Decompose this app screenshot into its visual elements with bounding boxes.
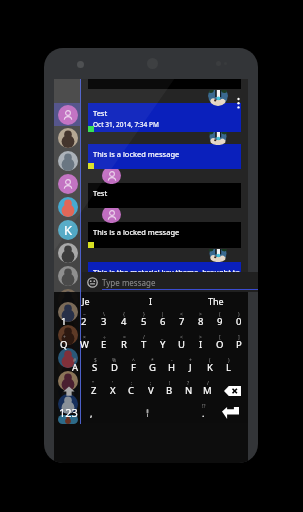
button[interactable]: P: [229, 333, 248, 356]
button[interactable]: [54, 287, 81, 310]
staticText: Test: [93, 108, 108, 118]
button[interactable]: [54, 369, 81, 392]
button[interactable]: 4: [114, 310, 134, 333]
button[interactable]: 8: [191, 310, 210, 333]
button[interactable]: Backspace: [217, 379, 248, 402]
staticText: |: [161, 311, 164, 318]
button[interactable]: I: [191, 333, 210, 356]
button[interactable]: Type message: [102, 272, 258, 292]
staticText: E: [101, 338, 107, 351]
button[interactable]: B: [160, 379, 179, 402]
button[interactable]: Test: [88, 183, 241, 208]
staticText: B: [166, 384, 173, 397]
button[interactable]: [54, 333, 81, 356]
button[interactable]: Q: [54, 333, 74, 356]
staticText: 5: [141, 315, 147, 328]
button[interactable]: [54, 126, 81, 149]
button[interactable]: D: [105, 356, 124, 379]
staticText: S: [92, 361, 98, 374]
button[interactable]: More options: [235, 97, 242, 109]
button[interactable]: G: [143, 356, 162, 379]
button[interactable]: X: [103, 379, 122, 402]
button[interactable]: S: [85, 356, 105, 379]
staticText: >: [199, 334, 202, 341]
button[interactable]: [54, 241, 81, 264]
button[interactable]: J: [181, 356, 200, 379]
button[interactable]: 1: [54, 310, 74, 333]
button[interactable]: M: [198, 379, 217, 402]
staticText: K: [64, 221, 73, 239]
staticText: (: [219, 311, 221, 318]
staticText: <: [180, 311, 183, 318]
button[interactable]: 3: [94, 310, 114, 333]
staticText: !?: [202, 403, 206, 410]
button[interactable]: Z: [84, 379, 103, 402]
button[interactable]: [54, 195, 81, 218]
button[interactable]: 7: [172, 310, 191, 333]
button[interactable]: E: [94, 333, 114, 356]
button[interactable]: [54, 264, 81, 287]
staticText: +: [189, 357, 192, 364]
staticText: -: [171, 357, 173, 364]
staticText: This is the material key theme, brought …: [93, 267, 241, 272]
button[interactable]: Y: [153, 333, 172, 356]
button[interactable]: [54, 149, 81, 172]
button[interactable]: W: [74, 333, 94, 356]
button[interactable]: [54, 346, 81, 369]
staticText: Type message: [102, 277, 156, 288]
button[interactable]: 9: [210, 310, 229, 333]
button[interactable]: O: [210, 333, 229, 356]
staticText: 3: [101, 315, 107, 328]
button[interactable]: This is a locked message: [88, 222, 241, 248]
button[interactable]: T: [134, 333, 153, 356]
staticText: #: [73, 357, 77, 364]
staticText: This is a locked message: [93, 149, 180, 159]
staticText: This is a locked message: [93, 227, 180, 237]
button[interactable]: F: [124, 356, 143, 379]
button[interactable]: 0: [229, 310, 248, 333]
button[interactable]: N: [179, 379, 198, 402]
button[interactable]: K: [54, 218, 81, 241]
button[interactable]: [54, 415, 81, 424]
button[interactable]: 2: [74, 310, 94, 333]
staticText: [: [219, 334, 221, 341]
button[interactable]: Space: [101, 402, 194, 423]
button[interactable]: A: [65, 356, 85, 379]
staticText: U: [178, 338, 185, 351]
button[interactable]: Enter: [213, 402, 248, 423]
button[interactable]: Shift: [54, 379, 84, 402]
button[interactable]: 123: [54, 402, 82, 423]
button[interactable]: [54, 323, 81, 346]
button[interactable]: Emoji: [82, 272, 102, 292]
button[interactable]: [54, 310, 81, 333]
button[interactable]: [54, 356, 81, 379]
button[interactable]: [54, 379, 81, 402]
button[interactable]: [54, 172, 81, 195]
staticText: 0: [236, 315, 242, 328]
button[interactable]: [54, 392, 81, 415]
button[interactable]: [54, 300, 81, 323]
button[interactable]: H: [162, 356, 181, 379]
button[interactable]: Test: [88, 103, 241, 132]
button[interactable]: ,: [82, 402, 101, 423]
staticText: +: [63, 334, 66, 341]
staticText: L: [226, 361, 231, 374]
button[interactable]: Je: [54, 292, 118, 310]
button[interactable]: This is a locked message: [88, 144, 241, 169]
button[interactable]: 6: [153, 310, 172, 333]
staticText: Y: [160, 338, 166, 351]
button[interactable]: C: [122, 379, 141, 402]
button[interactable]: The: [183, 292, 248, 310]
staticText: \: [103, 311, 105, 318]
button[interactable]: [54, 402, 81, 423]
button[interactable]: L: [219, 356, 238, 379]
button[interactable]: R: [114, 333, 134, 356]
button[interactable]: V: [141, 379, 160, 402]
button[interactable]: [54, 103, 81, 126]
button[interactable]: K: [200, 356, 219, 379]
button[interactable]: I: [118, 292, 183, 310]
button[interactable]: U: [172, 333, 191, 356]
button[interactable]: .: [194, 402, 213, 423]
button[interactable]: This is the material key theme, brought …: [88, 262, 241, 272]
button[interactable]: 5: [134, 310, 153, 333]
